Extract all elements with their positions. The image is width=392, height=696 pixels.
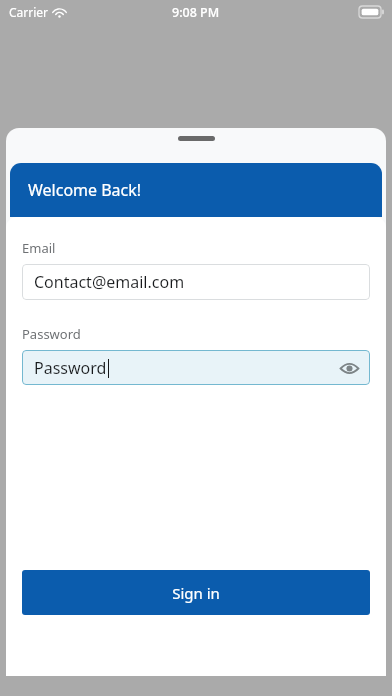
staticText: Password — [34, 357, 107, 379]
staticText: Welcome Back! — [28, 179, 142, 201]
staticText: Password — [22, 325, 81, 343]
staticText: Contact@email.com — [34, 271, 185, 293]
button[interactable]: Sign in — [22, 570, 370, 615]
button[interactable]: Contact@email.com — [22, 264, 370, 300]
button[interactable]: Password — [22, 350, 370, 385]
button[interactable]: Show password — [337, 356, 361, 380]
staticText: Email — [22, 239, 56, 257]
staticText: Sign in — [172, 583, 220, 603]
staticText: Carrier — [9, 4, 49, 20]
staticText: 9:08 PM — [172, 4, 220, 21]
button[interactable] — [178, 136, 215, 141]
other: Battery — [359, 6, 384, 18]
